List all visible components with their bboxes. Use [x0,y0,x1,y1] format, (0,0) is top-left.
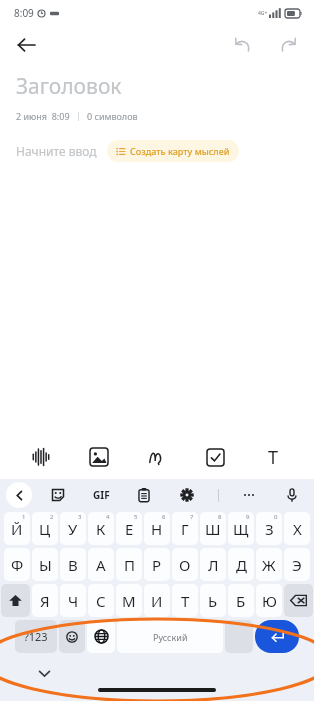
staticText: Г [181,519,189,539]
staticText: Б [236,591,246,611]
staticText: 3 [78,513,82,521]
button[interactable]: Т [172,584,198,617]
staticText: Создать карту мыслей [130,145,230,157]
staticText: Ф [11,555,24,575]
staticText: 2 июня 8:09 [16,110,70,122]
staticText: Русский [153,631,188,643]
button[interactable]: Stickers [46,483,70,507]
button[interactable]: Ю [256,584,282,617]
button[interactable]: Г [172,512,198,545]
staticText: Л [208,555,219,575]
button[interactable]: С [88,584,114,617]
button[interactable]: GIF [89,484,114,506]
staticText: З [265,519,274,539]
staticText: 6 [162,513,166,521]
button[interactable]: Н [144,512,170,545]
button[interactable] [59,620,85,653]
button[interactable]: More options [237,483,261,507]
button[interactable]: И [144,584,170,617]
button[interactable]: Undo [226,29,258,61]
staticText: М [122,591,136,611]
button[interactable]: Voice input [280,483,304,507]
staticText: 8:09 [14,6,34,20]
button[interactable]: Л [200,548,226,581]
button[interactable]: Enter [255,620,299,653]
button[interactable]: Й [4,512,30,545]
staticText: С [96,591,106,611]
button[interactable] [87,620,115,653]
button[interactable]: Clipboard [132,483,156,507]
staticText: Е [125,519,134,539]
button[interactable]: Д [228,548,254,581]
staticText: Я [40,591,50,611]
button[interactable]: Insert image [82,440,116,474]
staticText: ?123 [24,629,48,644]
staticText: 0 символов [87,110,138,122]
staticText: T [268,445,279,470]
button[interactable]: Voice recording [24,440,58,474]
button[interactable]: Back [10,29,42,61]
button[interactable]: Ч [60,584,86,617]
button[interactable]: Handwriting [140,440,174,474]
button[interactable]: Е [116,512,142,545]
button[interactable]: З [256,512,282,545]
button[interactable]: Щ [228,512,254,545]
staticText: 4 [106,513,110,521]
button[interactable]: У [60,512,86,545]
staticText: Э [292,555,302,575]
button[interactable]: Ж [256,548,282,581]
staticText: 0 [274,513,278,521]
staticText: Ы [39,555,52,575]
button[interactable]: В [60,548,86,581]
button[interactable]: Ы [32,548,58,581]
button[interactable] [284,584,313,617]
button[interactable]: Ц [32,512,58,545]
button[interactable]: Русский [117,620,223,653]
staticText: А [96,555,106,575]
button[interactable]: А [88,548,114,581]
staticText: Ж [262,555,276,575]
button[interactable]: Х [284,512,310,545]
button[interactable]: Я [32,584,58,617]
button[interactable] [1,584,30,617]
staticText: Х [293,519,302,539]
staticText: 1 [22,513,26,521]
staticText: Й [11,519,23,539]
staticText: Ц [39,519,51,539]
staticText: У [68,519,78,539]
staticText: В [68,555,78,575]
button[interactable]: Ш [200,512,226,545]
button[interactable]: Text format [256,440,290,474]
staticText: Начните ввод [16,143,97,159]
button[interactable]: Р [144,548,170,581]
staticText: Т [181,591,190,611]
button[interactable]: Э [284,548,310,581]
staticText: Ч [68,591,79,611]
button[interactable]: Checklist [198,440,232,474]
button[interactable]: М [116,584,142,617]
button[interactable]: К [88,512,114,545]
staticText: Заголовок [16,72,122,101]
button[interactable]: Ь [200,584,226,617]
button[interactable]: О [172,548,198,581]
button[interactable]: Создать карту мыслей [107,140,239,162]
button[interactable]: ?123 [15,620,57,653]
button[interactable] [225,620,253,653]
button[interactable]: Redo [272,29,304,61]
staticText: Д [236,555,247,575]
staticText: К [96,519,106,539]
staticText: 8 [218,513,222,521]
staticText: 2 [50,513,54,521]
button[interactable]: Б [228,584,254,617]
staticText: GIF [93,488,110,502]
staticText: О [179,555,191,575]
staticText: Ш [205,519,221,539]
staticText: 7 [190,513,194,521]
button[interactable]: Back [6,482,32,508]
staticText: Щ [233,519,249,539]
button[interactable]: П [116,548,142,581]
button[interactable]: Hide keyboard [32,661,56,685]
button[interactable]: Ф [4,548,30,581]
staticText: 4G+ [258,10,268,17]
button[interactable]: Settings [175,483,199,507]
